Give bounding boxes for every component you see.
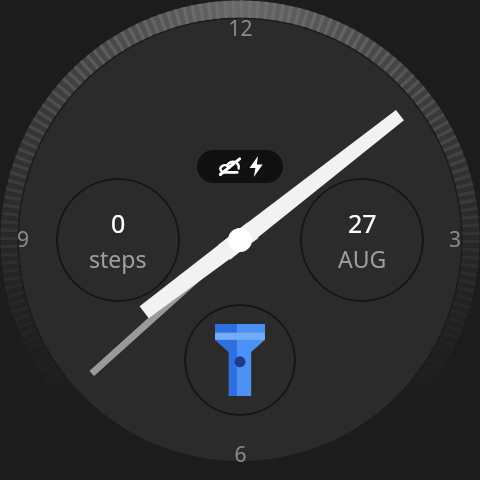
button[interactable]: 0 xyxy=(56,178,180,302)
staticText: 12 xyxy=(228,14,253,43)
staticText: 27 xyxy=(348,206,377,240)
staticText: 9 xyxy=(17,225,30,254)
staticText: 6 xyxy=(234,440,247,469)
staticText: AUG xyxy=(338,243,387,274)
button[interactable]: Flashlight xyxy=(184,304,296,416)
staticText: 3 xyxy=(449,225,462,254)
staticText: 0 xyxy=(111,206,126,240)
button[interactable]: Disconnected, charging xyxy=(197,150,283,183)
button[interactable]: 27 xyxy=(300,178,424,302)
staticText: steps xyxy=(89,243,147,274)
